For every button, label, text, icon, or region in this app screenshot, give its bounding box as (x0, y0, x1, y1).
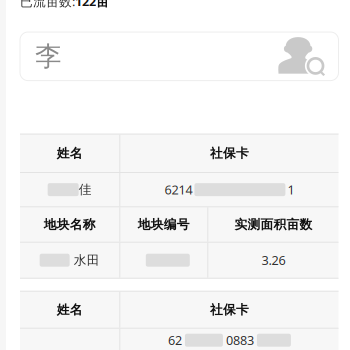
staticText: 水田 (74, 252, 100, 268)
staticText: 社保卡 (210, 302, 249, 318)
staticText: 姓名 (57, 302, 83, 318)
staticText: 62 (168, 332, 182, 349)
staticText: 实测面积亩数 (234, 216, 312, 232)
staticText: 地块编号 (138, 216, 190, 232)
staticText: 122亩 (75, 0, 109, 10)
staticText: 姓名 (57, 145, 83, 161)
staticText: 已流亩数: (20, 0, 75, 10)
staticText: 李 (35, 39, 62, 73)
staticText: 社保卡 (210, 145, 249, 161)
staticText: 6214 (164, 181, 192, 198)
staticText: 佳 (79, 182, 92, 198)
staticText: 3.26 (261, 252, 285, 269)
staticText: 0883 (226, 332, 254, 349)
staticText: 地块名称 (44, 216, 96, 232)
button[interactable]: 李 (20, 32, 338, 81)
staticText: 1 (287, 181, 294, 198)
